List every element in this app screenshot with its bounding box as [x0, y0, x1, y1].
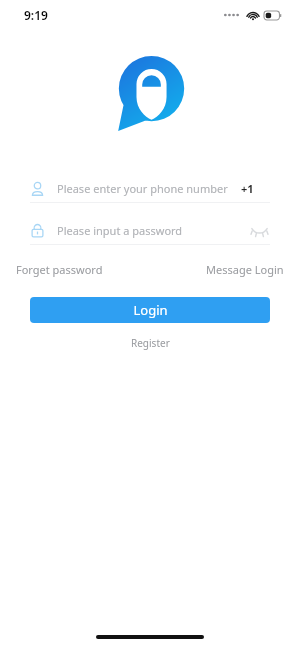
staticText: Forget password	[16, 262, 103, 277]
button[interactable]: Register	[123, 333, 178, 353]
staticText: Login	[133, 301, 168, 319]
button[interactable]: Message Login	[202, 258, 288, 281]
staticText: Register	[131, 336, 170, 350]
staticText: Please enter your phone number	[57, 181, 228, 196]
staticText: Please input a password	[57, 223, 183, 238]
staticText: +1	[241, 181, 254, 196]
button[interactable]: Forget password	[12, 258, 107, 281]
staticText: 9:19	[24, 7, 48, 23]
staticText: Message Login	[206, 262, 284, 277]
button[interactable]: Please enter your phone number	[30, 174, 270, 202]
button[interactable]: Please input a password	[30, 216, 270, 244]
button[interactable]: Login	[30, 297, 270, 323]
button[interactable]: Show password	[248, 220, 270, 240]
